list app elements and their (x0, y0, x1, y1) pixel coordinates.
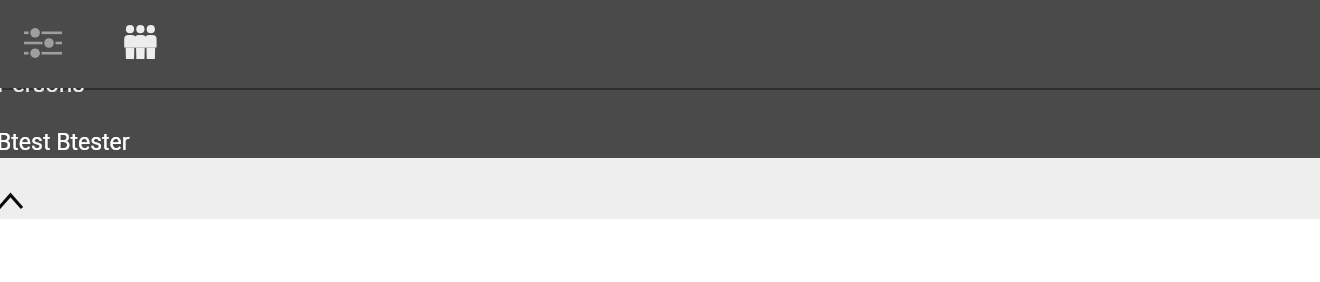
button[interactable]: Filters (0, 0, 85, 88)
button[interactable]: Collapse (0, 179, 43, 223)
staticText: Persons (0, 88, 85, 98)
button[interactable]: Btest Btester (0, 129, 130, 156)
button[interactable]: Groups (85, 0, 193, 88)
